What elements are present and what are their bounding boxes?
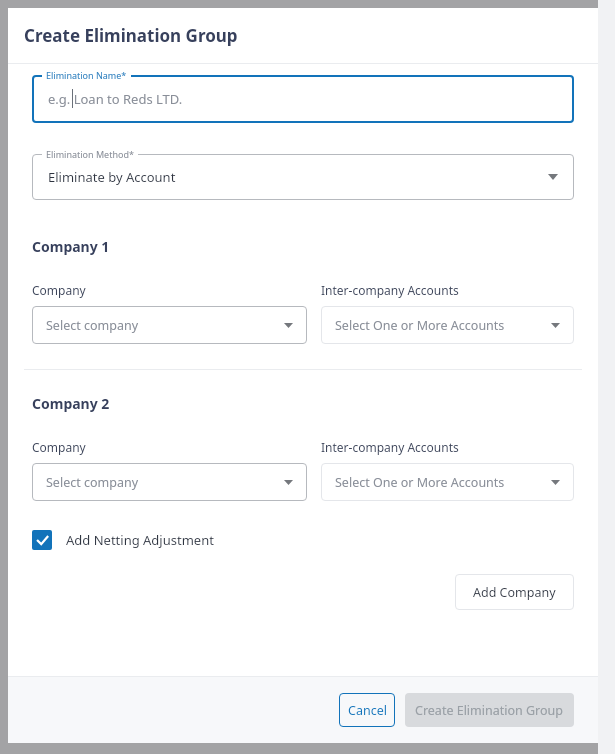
- button[interactable]: Select company: [32, 306, 307, 344]
- staticText: Select company: [46, 317, 139, 334]
- staticText: Select One or More Accounts: [335, 474, 505, 491]
- staticText: Cancel: [348, 702, 387, 719]
- staticText: Company 1: [32, 237, 110, 256]
- button[interactable]: Add Company: [455, 574, 574, 610]
- staticText: e.g. Loan to Reds LTD.: [48, 90, 183, 108]
- button[interactable]: [32, 75, 574, 123]
- button[interactable]: Create Elimination Group: [405, 693, 574, 727]
- staticText: Eliminate by Account: [48, 168, 176, 186]
- staticText: Elimination Name*: [46, 69, 127, 81]
- staticText: Select company: [46, 474, 139, 491]
- staticText: Create Elimination Group: [24, 24, 238, 47]
- button[interactable]: Cancel: [339, 693, 395, 727]
- button[interactable]: Select company: [32, 463, 307, 501]
- other: Open Elimination Method* dropdown: [548, 174, 558, 180]
- staticText: Add Company: [473, 584, 556, 601]
- staticText: Select One or More Accounts: [335, 317, 505, 334]
- button[interactable]: [32, 154, 574, 200]
- staticText: Elimination Method*: [46, 148, 134, 160]
- button[interactable]: Add Netting Adjustment: [32, 530, 214, 550]
- staticText: Create Elimination Group: [415, 702, 564, 719]
- staticText: Company: [32, 439, 86, 455]
- staticText: Inter-company Accounts: [321, 282, 459, 298]
- staticText: Inter-company Accounts: [321, 439, 459, 455]
- staticText: Company: [32, 282, 86, 298]
- button[interactable]: Select One or More Accounts: [321, 306, 574, 344]
- button[interactable]: Select One or More Accounts: [321, 463, 574, 501]
- staticText: Company 2: [32, 394, 110, 413]
- staticText: Add Netting Adjustment: [66, 531, 214, 549]
